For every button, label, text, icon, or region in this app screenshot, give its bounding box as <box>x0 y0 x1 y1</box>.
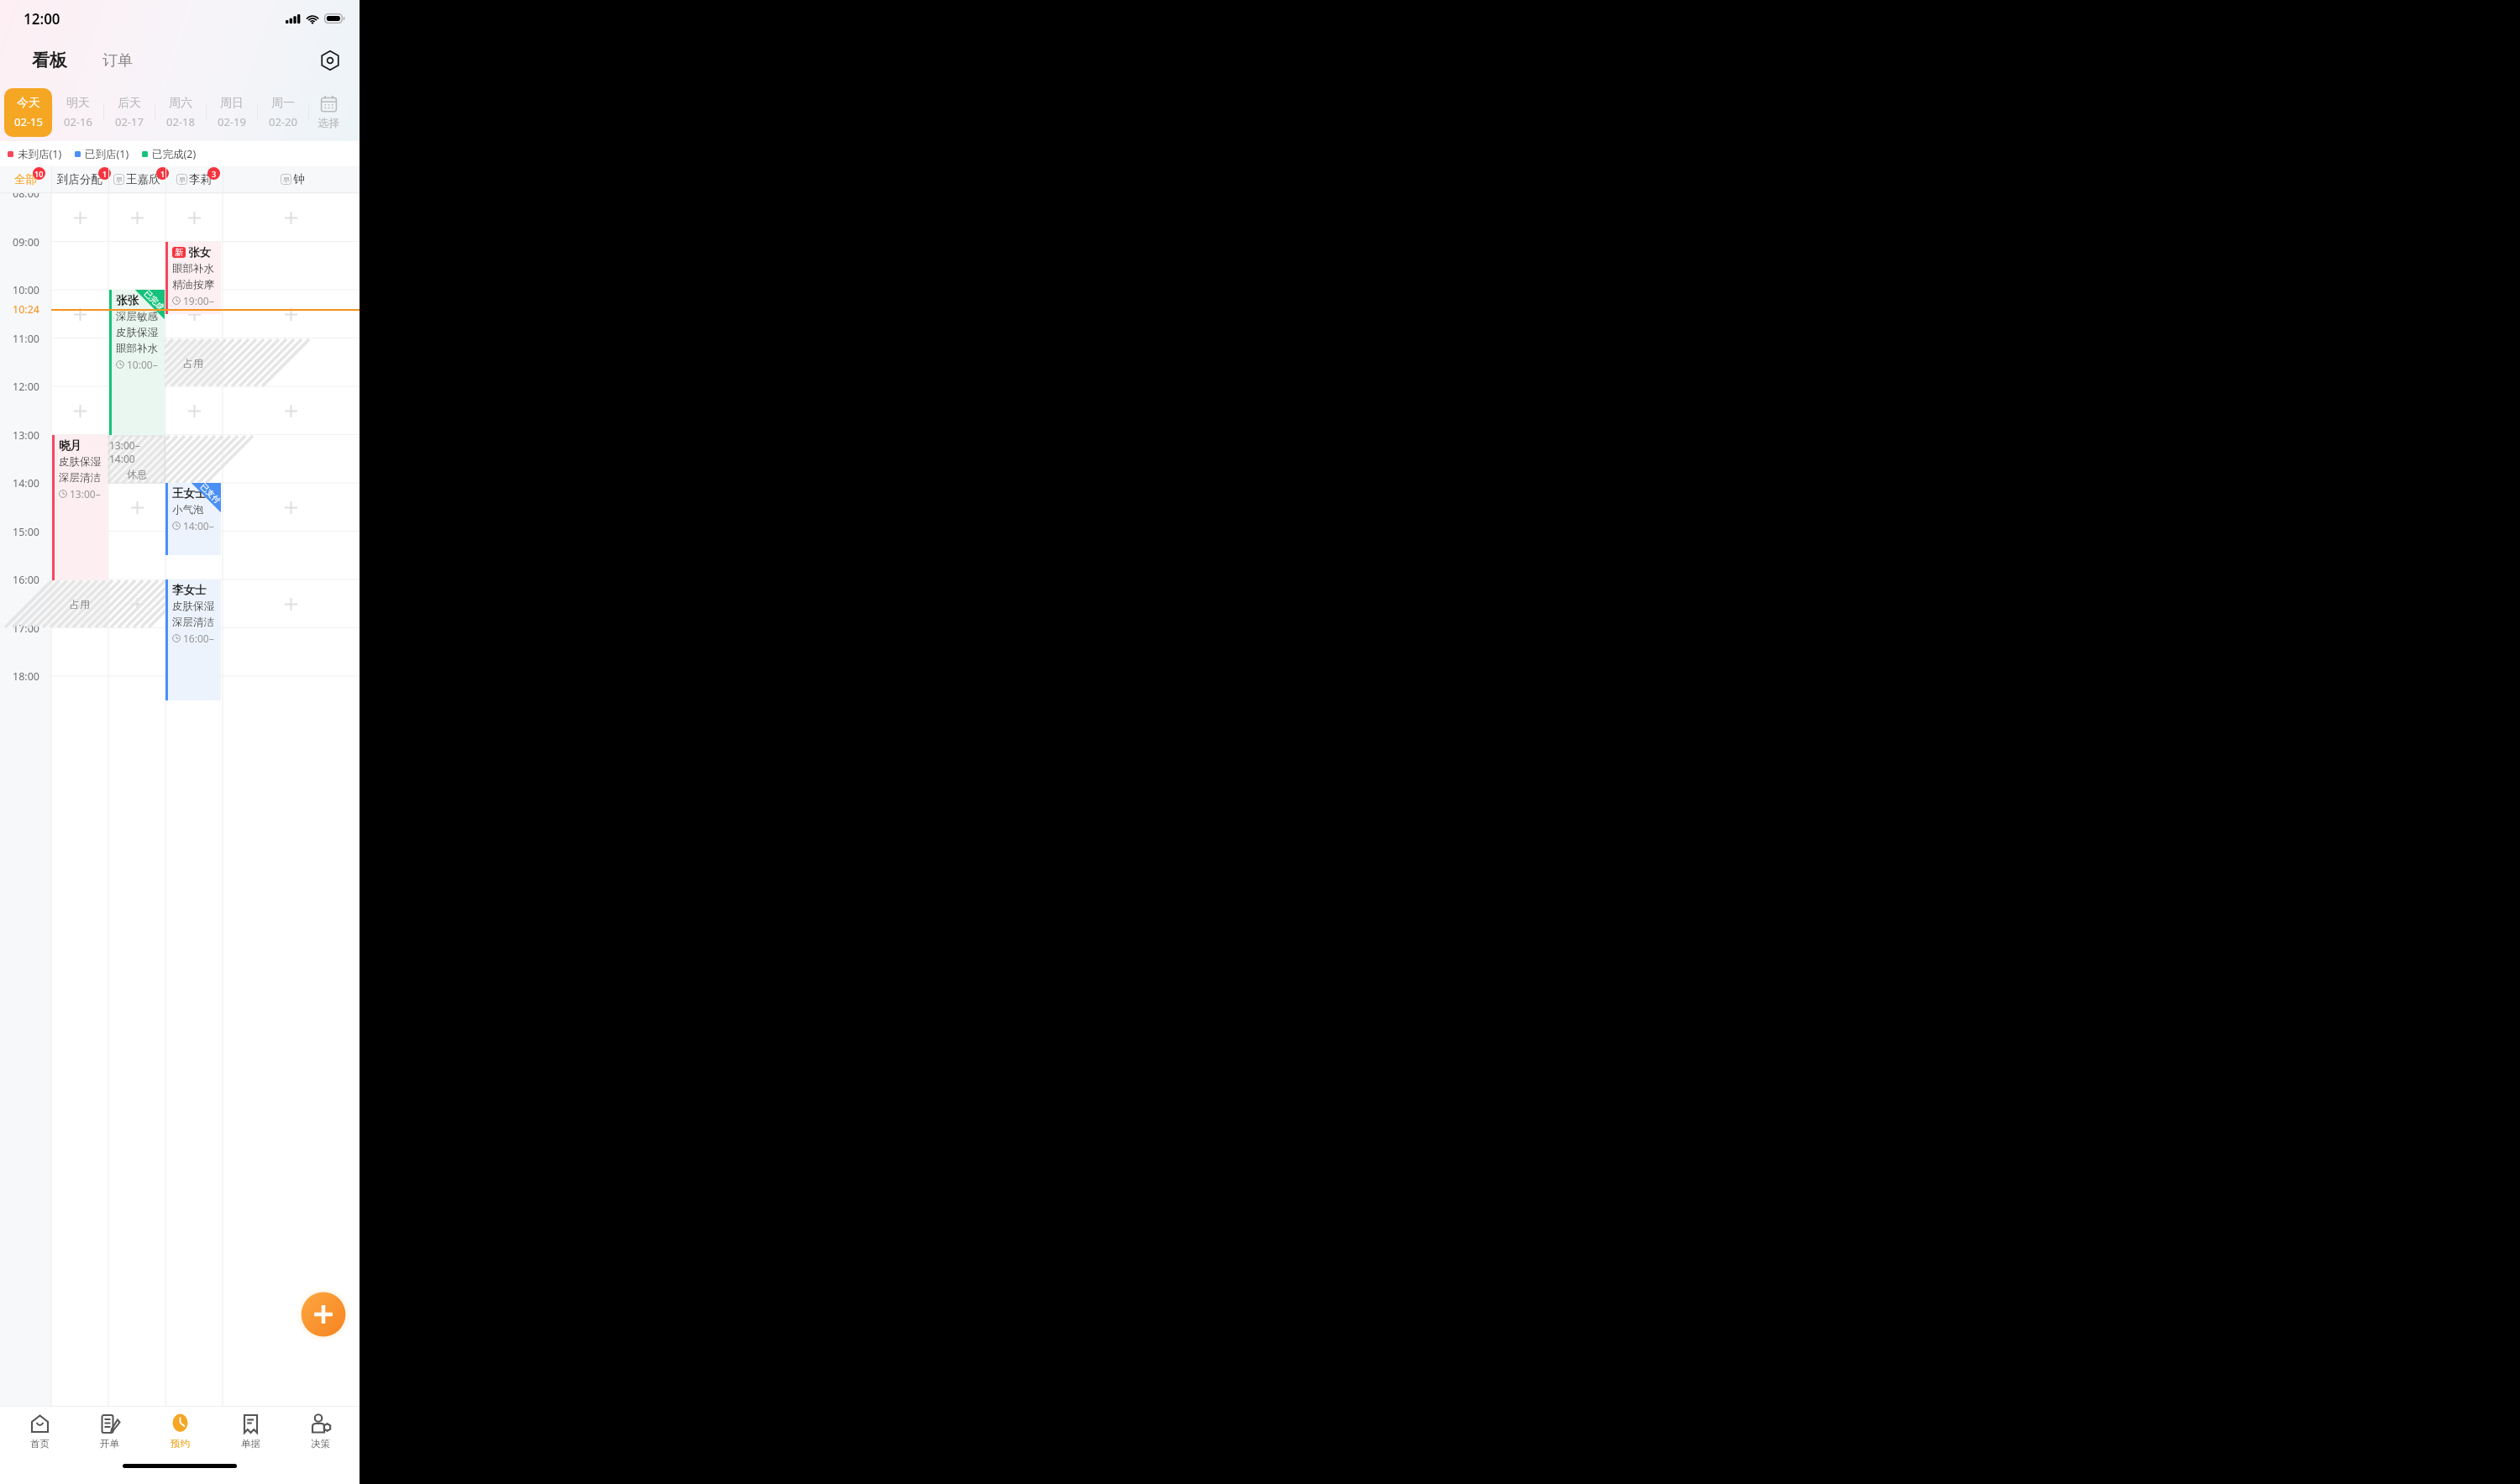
button[interactable]: 新增预约 <box>165 386 223 435</box>
staticText: 周日 <box>220 96 244 111</box>
staticText: 张女士 <box>188 245 219 260</box>
button[interactable]: 新增预约 <box>108 290 165 338</box>
button[interactable]: 新增预约 <box>108 193 165 242</box>
staticText: 小气泡 <box>172 503 204 517</box>
button[interactable]: 占用 <box>52 580 108 627</box>
button[interactable]: 新增预约 <box>51 386 108 435</box>
button[interactable]: 早 <box>108 166 165 192</box>
staticText: 13:00 <box>13 428 39 442</box>
button[interactable]: 新增预约 <box>223 193 360 242</box>
button[interactable]: 新增预约 <box>51 483 108 532</box>
button[interactable]: 新增预约 <box>223 483 360 532</box>
button[interactable]: 看板 <box>29 46 71 75</box>
button[interactable]: 开单 <box>78 1407 140 1455</box>
button[interactable]: 周一 <box>257 88 308 137</box>
staticText: 12:00 <box>24 9 60 29</box>
staticText: 02-19 <box>218 114 246 129</box>
staticText: 深层敏感肌护… <box>116 310 163 323</box>
staticText: 已支付 <box>198 483 221 506</box>
staticText: 1 <box>102 169 108 179</box>
button[interactable]: 晓月 <box>52 435 108 580</box>
button[interactable]: 首页 <box>8 1407 71 1455</box>
staticText: 16:00 <box>13 573 39 586</box>
staticText: 占用 <box>70 598 90 611</box>
button[interactable]: 明天 <box>52 88 103 137</box>
button[interactable]: 新增预约 <box>165 483 223 532</box>
staticText: 14:00–15:30 <box>183 519 219 532</box>
button[interactable]: 订单 <box>99 48 136 74</box>
staticText: 李莉 <box>189 172 212 186</box>
button[interactable]: 新增预约 <box>108 386 165 435</box>
staticText: 02-17 <box>115 114 144 129</box>
staticText: 皮肤保湿 <box>59 455 101 469</box>
staticText: 周一 <box>271 96 295 111</box>
staticText: 10 <box>34 169 44 179</box>
button[interactable]: 新增预约 <box>108 483 165 532</box>
staticText: 单据 <box>241 1438 260 1450</box>
staticText: 未到店(1) <box>18 147 62 161</box>
button[interactable]: 李女士 <box>165 579 221 700</box>
button[interactable]: 张张 <box>109 290 165 435</box>
button[interactable]: 后天 <box>103 88 155 137</box>
button[interactable]: 今天 <box>4 88 52 137</box>
button[interactable]: 新增预约 <box>223 290 360 338</box>
button[interactable]: 决策 <box>289 1407 351 1455</box>
staticText: 早 <box>116 176 123 184</box>
staticText: 深层清洁去黑头 <box>59 471 106 485</box>
staticText: 钟 <box>293 172 305 186</box>
staticText: 皮肤保湿 <box>116 326 158 339</box>
button[interactable]: 新增预约 <box>51 579 108 628</box>
staticText: 到店分配 <box>57 172 102 186</box>
button[interactable]: 到店分配 <box>51 166 108 192</box>
staticText: 3 <box>212 169 217 179</box>
staticText: 眼部补水 <box>172 262 214 275</box>
staticText: 开单 <box>100 1438 119 1450</box>
staticText: 决策 <box>311 1438 330 1450</box>
button[interactable]: 早 <box>223 166 360 192</box>
staticText: 后天 <box>118 96 141 111</box>
button[interactable]: 全部 <box>0 166 51 192</box>
button[interactable]: 早 <box>165 166 223 192</box>
staticText: 17:00 <box>13 621 39 635</box>
button[interactable]: 新建预约 <box>296 1287 351 1342</box>
button[interactable]: 周六 <box>155 88 206 137</box>
staticText: 预约 <box>171 1438 190 1450</box>
staticText: 休息 <box>127 468 147 480</box>
staticText: 13:00–14:00 <box>109 438 165 465</box>
button[interactable]: 新增预约 <box>51 290 108 338</box>
staticText: 02-15 <box>14 114 43 129</box>
button[interactable]: 预约 <box>149 1407 211 1455</box>
button[interactable]: 新增预约 <box>51 193 108 242</box>
staticText: 02-20 <box>269 114 297 129</box>
button[interactable]: 选择日期 <box>308 88 349 137</box>
button[interactable]: 新增预约 <box>165 290 223 338</box>
button[interactable]: 占用 <box>165 339 221 386</box>
staticText: 李女士 <box>172 583 207 597</box>
staticText: 王嘉欣 <box>126 172 160 186</box>
staticText: 11:00 <box>13 332 39 345</box>
button[interactable]: Settings <box>313 44 347 77</box>
button[interactable]: 单据 <box>219 1407 281 1455</box>
staticText: 看板 <box>32 50 67 71</box>
staticText: 18:00 <box>13 669 39 683</box>
staticText: 16:00–18:30 <box>183 632 219 645</box>
button[interactable]: 新 <box>165 242 221 314</box>
button[interactable]: 13:00–14:00 <box>109 436 165 483</box>
button[interactable]: 周日 <box>206 88 257 137</box>
staticText: 周六 <box>169 96 192 111</box>
staticText: 已完成(2) <box>152 147 197 161</box>
staticText: 选择 <box>318 116 339 129</box>
staticText: 10:00 <box>13 283 39 296</box>
button[interactable]: 新增预约 <box>165 193 223 242</box>
button[interactable]: 新增预约 <box>165 579 223 628</box>
button[interactable]: 王女士 <box>165 483 221 555</box>
staticText: 10:24 <box>13 302 39 316</box>
staticText: 已到店(1) <box>85 147 129 161</box>
staticText: 10:00–13:00 <box>127 358 163 371</box>
button[interactable]: 新增预约 <box>108 579 165 628</box>
staticText: 皮肤保湿 <box>172 600 214 613</box>
staticText: 深层清洁去黑… <box>172 616 219 629</box>
staticText: 占用 <box>183 357 203 370</box>
